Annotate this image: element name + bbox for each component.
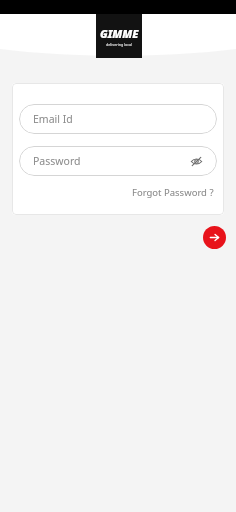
button[interactable]: Sign in	[203, 226, 226, 249]
staticText: GIMME	[100, 26, 139, 41]
staticText: Email Id	[33, 112, 73, 126]
staticText: Forgot Password ?	[132, 186, 214, 199]
button[interactable]: Forgot Password ?	[129, 184, 217, 201]
staticText: Password	[33, 154, 81, 168]
button[interactable]: Password	[19, 146, 217, 176]
staticText: delivering local	[106, 42, 133, 47]
button[interactable]: Email Id	[19, 104, 217, 134]
button[interactable]: Show password	[187, 152, 205, 170]
